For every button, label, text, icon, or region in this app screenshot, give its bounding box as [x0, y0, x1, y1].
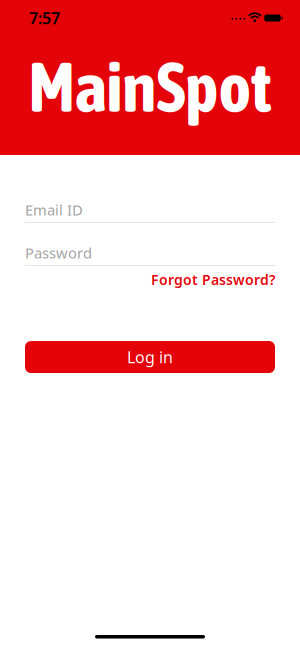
button[interactable]: Forgot Password?	[151, 270, 275, 289]
staticText: 7:57	[29, 7, 60, 29]
button[interactable]: Password	[25, 243, 275, 266]
staticText: MainSpot	[28, 47, 271, 126]
staticText: Forgot Password?	[151, 270, 275, 289]
staticText: Log in	[127, 346, 173, 368]
staticText: Password	[25, 243, 92, 262]
button[interactable]: Log in	[25, 341, 275, 373]
staticText: Email ID	[25, 200, 83, 219]
button[interactable]: Email ID	[25, 200, 275, 223]
